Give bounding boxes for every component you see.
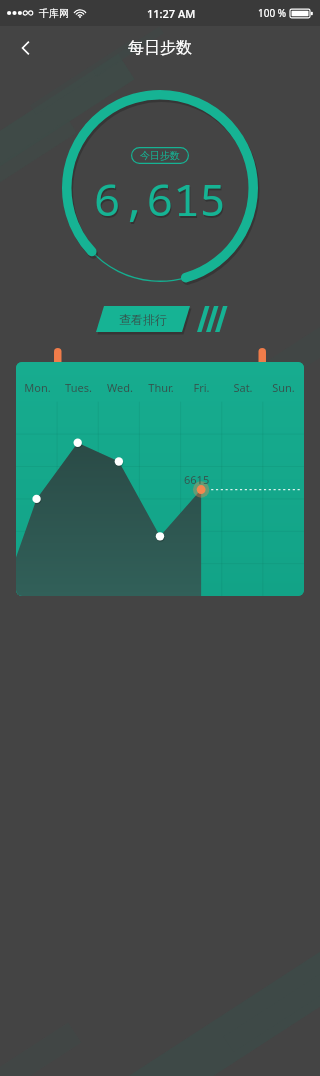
staticText: Wed. bbox=[107, 380, 133, 395]
staticText: Sat. bbox=[233, 380, 253, 395]
staticText: Tues. bbox=[65, 380, 92, 395]
staticText: Fri. bbox=[193, 380, 210, 395]
staticText: 每日步数 bbox=[128, 38, 192, 58]
staticText: 千库网 bbox=[39, 7, 69, 20]
staticText: 100 % bbox=[258, 6, 287, 20]
staticText: 查看排行 bbox=[119, 312, 167, 327]
button[interactable]: 查看排行 bbox=[96, 306, 190, 332]
staticText: 今日步数 bbox=[140, 149, 180, 162]
staticText: 6615 bbox=[184, 472, 210, 487]
staticText: 6,615 bbox=[94, 169, 226, 229]
staticText: Thur. bbox=[148, 380, 174, 395]
staticText: 11:27 AM bbox=[147, 6, 196, 21]
button[interactable]: Mon. bbox=[16, 362, 304, 596]
staticText: 6,615 bbox=[95, 171, 227, 231]
staticText: Sun. bbox=[272, 380, 295, 395]
staticText: Mon. bbox=[24, 380, 51, 395]
button[interactable]: Back bbox=[6, 28, 46, 68]
